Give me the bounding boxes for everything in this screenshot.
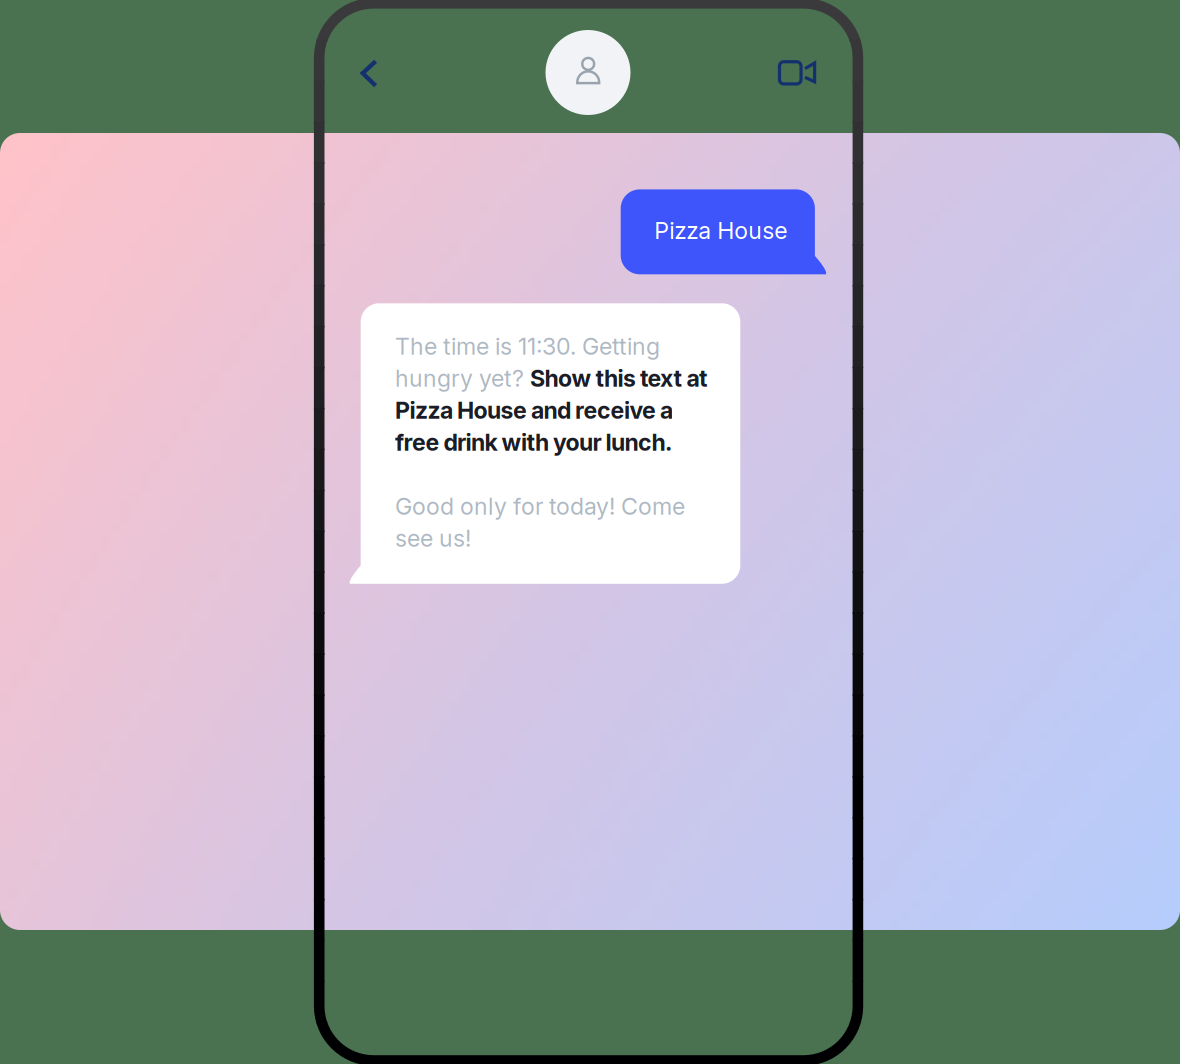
button[interactable]: Contact profile [545,30,630,115]
staticText: hungry yet? [395,364,530,392]
staticText: see us! [395,524,471,552]
staticText: Show this text at [530,364,708,392]
staticText: Pizza House and receive a [395,396,673,424]
staticText: Good only for today! Come [395,492,685,520]
staticText: Pizza House [654,216,787,244]
button[interactable]: Back [358,56,402,100]
button[interactable]: Video call [775,56,821,102]
staticText: The time is 11:30. Getting [395,332,660,360]
staticText: free drink with your lunch. [395,428,672,456]
